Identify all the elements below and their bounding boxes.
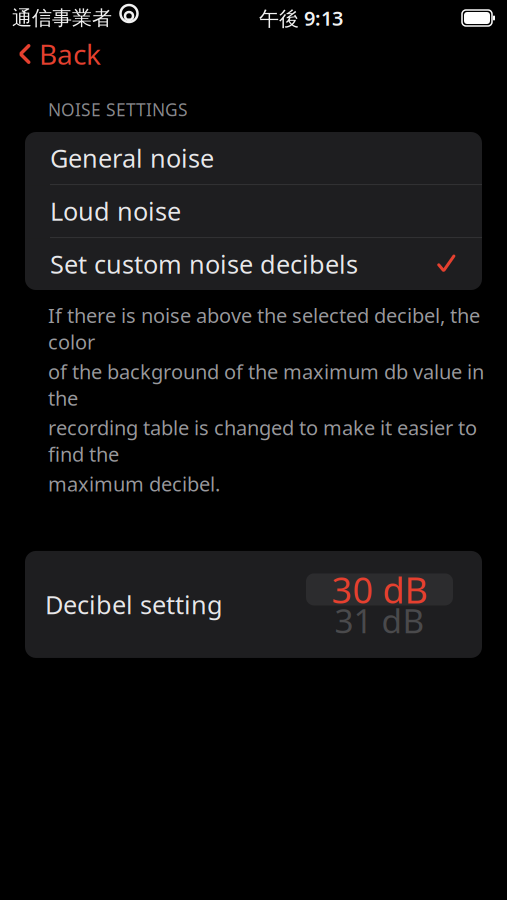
staticText: If there is noise above the selected dec… [48, 302, 480, 355]
staticText: 30 dB [331, 565, 427, 613]
staticText: 通信事業者 [12, 6, 112, 30]
button[interactable]: Back [0, 32, 115, 76]
staticText: of the background of the maximum db valu… [48, 358, 484, 411]
staticText: 午後 9:13 [259, 5, 343, 31]
staticText: Back [39, 35, 101, 73]
staticText: Decibel setting [45, 588, 223, 621]
button[interactable]: Loud noise [25, 185, 482, 237]
staticText: recording table is changed to make it ea… [48, 414, 477, 467]
staticText: 31 dB [334, 598, 424, 643]
button[interactable]: Set custom noise decibels [25, 238, 482, 290]
staticText: Loud noise [50, 194, 181, 228]
staticText: NOISE SETTINGS [48, 98, 188, 121]
staticText: maximum decibel. [48, 470, 220, 497]
staticText: Set custom noise decibels [50, 247, 358, 281]
button[interactable]: General noise [25, 132, 482, 184]
staticText: General noise [50, 141, 214, 175]
